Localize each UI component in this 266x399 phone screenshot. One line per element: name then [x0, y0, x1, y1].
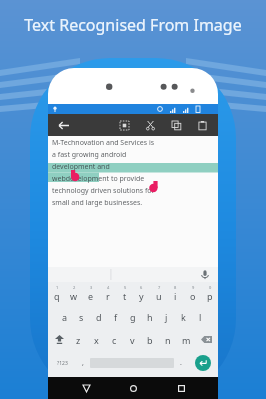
staticText: 9	[192, 285, 195, 290]
button[interactable]: .	[174, 351, 188, 375]
button[interactable]: l	[192, 305, 209, 328]
staticText: Text Recognised From Image	[24, 14, 242, 36]
button[interactable]: Enter	[195, 355, 211, 371]
staticText: a fast growing android	[52, 150, 127, 160]
staticText: r	[106, 290, 110, 302]
button[interactable]: z	[70, 328, 87, 351]
staticText: i	[174, 290, 177, 302]
button[interactable]: g	[124, 305, 141, 328]
button[interactable]: 7	[150, 282, 167, 305]
staticText: 3	[90, 285, 93, 290]
staticText: development and	[52, 162, 110, 172]
button[interactable]: Back	[54, 116, 72, 134]
button[interactable]: Back	[76, 378, 96, 398]
staticText: k	[181, 311, 186, 323]
button[interactable]: 2	[65, 282, 82, 305]
staticText: webdevelopment to provide	[52, 174, 145, 184]
staticText: e	[88, 290, 94, 302]
staticText: c	[112, 334, 117, 346]
button[interactable]: j	[158, 305, 175, 328]
button[interactable]: d	[90, 305, 107, 328]
staticText: p	[207, 290, 213, 302]
button[interactable]: 9	[184, 282, 201, 305]
staticText: 1	[56, 285, 59, 290]
staticText: 5	[124, 285, 127, 290]
staticText: y	[139, 290, 144, 302]
staticText: o	[190, 290, 196, 302]
staticText: n	[165, 334, 171, 346]
staticText: s	[79, 311, 84, 323]
button[interactable]: 6	[133, 282, 150, 305]
button[interactable]: 0	[201, 282, 218, 305]
staticText: x	[94, 334, 99, 346]
staticText: 6	[140, 285, 143, 290]
button[interactable]: Paste	[194, 117, 210, 133]
button[interactable]: Copy	[168, 117, 184, 133]
staticText: 0	[209, 285, 212, 290]
staticText: 8	[174, 285, 177, 290]
button[interactable]: s	[73, 305, 90, 328]
staticText: ?123	[57, 360, 68, 367]
staticText: j	[165, 311, 168, 323]
staticText: 4	[107, 285, 110, 290]
button[interactable]: ?123	[48, 351, 76, 375]
staticText: small and large businesses.	[52, 198, 143, 208]
button[interactable]: ,	[76, 351, 90, 375]
button[interactable]: n	[159, 328, 177, 351]
button[interactable]: Cut	[142, 117, 158, 133]
staticText: l	[199, 311, 202, 323]
staticText: z	[76, 334, 81, 346]
button[interactable]: k	[175, 305, 192, 328]
button[interactable]: Backspace	[195, 328, 218, 351]
button[interactable]: 8	[167, 282, 184, 305]
staticText: m	[182, 334, 191, 346]
staticText: u	[156, 290, 162, 302]
button[interactable]: f	[107, 305, 124, 328]
button[interactable]: 4	[99, 282, 116, 305]
button[interactable]: Shift	[48, 328, 70, 351]
staticText: w	[70, 290, 78, 302]
staticText: ,	[82, 358, 84, 368]
button[interactable]: c	[105, 328, 123, 351]
staticText: .	[180, 358, 182, 368]
staticText: t	[123, 290, 127, 302]
button[interactable]: v	[123, 328, 141, 351]
button[interactable]: 1	[48, 282, 65, 305]
staticText: q	[54, 290, 60, 302]
staticText: 7	[158, 285, 161, 290]
staticText: g	[130, 311, 136, 323]
staticText: b	[147, 334, 153, 346]
staticText: h	[147, 311, 153, 323]
button[interactable]: Home	[123, 378, 143, 398]
button[interactable]: a	[56, 305, 73, 328]
staticText: d	[96, 311, 102, 323]
button[interactable]: Select all	[116, 117, 132, 133]
staticText: a	[62, 311, 68, 323]
button[interactable]: Recents	[171, 378, 191, 398]
staticText: v	[130, 334, 135, 346]
staticText: f	[114, 311, 118, 323]
button[interactable]: m	[177, 328, 195, 351]
button[interactable]: x	[87, 328, 105, 351]
button[interactable]: h	[141, 305, 158, 328]
button[interactable]: 5	[116, 282, 133, 305]
staticText: 2	[73, 285, 76, 290]
button[interactable]: 3	[82, 282, 99, 305]
staticText: M-Technovation and Services is	[52, 138, 155, 148]
staticText: technology driven solutions for	[52, 186, 155, 196]
button[interactable]: b	[141, 328, 159, 351]
